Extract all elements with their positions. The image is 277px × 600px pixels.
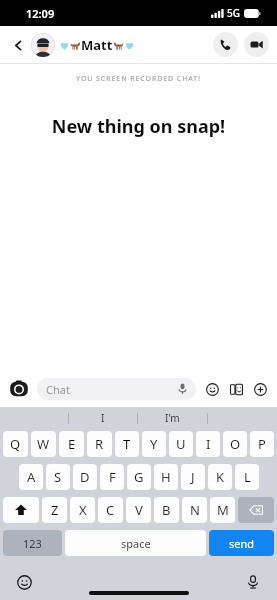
button[interactable]: K	[208, 464, 232, 490]
staticText: M	[217, 501, 229, 519]
button[interactable]: space	[65, 530, 206, 556]
button[interactable]: Stickers	[227, 380, 245, 398]
button[interactable]: N	[182, 497, 207, 523]
button[interactable]: S	[46, 464, 70, 490]
button[interactable]: X	[70, 497, 95, 523]
staticText: K	[216, 468, 225, 486]
staticText: N	[190, 501, 200, 519]
staticText: New thing on snap!	[0, 114, 277, 139]
staticText: Matt	[81, 36, 113, 54]
button[interactable]: C	[98, 497, 123, 523]
staticText: Q	[10, 435, 21, 453]
button[interactable]: L	[235, 464, 259, 490]
button[interactable]: T	[115, 431, 139, 457]
staticText: V	[135, 501, 143, 519]
staticText: F	[109, 468, 116, 486]
button[interactable]: Camera	[8, 378, 30, 400]
button[interactable]: B	[154, 497, 179, 523]
staticText: T	[123, 435, 131, 453]
staticText: Z	[51, 501, 59, 519]
button[interactable]: 123	[3, 530, 62, 556]
button[interactable]: Q	[3, 431, 28, 457]
button[interactable]: O	[223, 431, 247, 457]
staticText: A	[27, 468, 36, 486]
button[interactable]: Video call	[244, 32, 269, 57]
staticText: send	[229, 536, 255, 551]
staticText: O	[230, 435, 241, 453]
button[interactable]: G	[127, 464, 151, 490]
button[interactable]: I	[196, 431, 220, 457]
staticText: B	[162, 501, 171, 519]
button[interactable]: More	[251, 380, 269, 398]
button[interactable]: I'm	[138, 407, 207, 429]
button[interactable]: U	[169, 431, 193, 457]
button[interactable]: E	[59, 431, 84, 457]
button[interactable]: R	[87, 431, 112, 457]
button[interactable]: Y	[142, 431, 166, 457]
staticText: L	[244, 468, 251, 486]
staticText: J	[191, 468, 195, 486]
button[interactable]: I	[69, 407, 137, 429]
button[interactable]: A	[19, 464, 43, 490]
button[interactable]: Shift	[3, 497, 39, 523]
button[interactable]: Call	[213, 32, 238, 57]
staticText: 123	[23, 536, 42, 551]
button[interactable]: V	[126, 497, 151, 523]
staticText: C	[106, 501, 115, 519]
staticText: D	[80, 468, 90, 486]
button[interactable]: W	[31, 431, 56, 457]
staticText: I'm	[165, 411, 180, 425]
staticText: E	[68, 435, 76, 453]
button[interactable]: Z	[42, 497, 67, 523]
staticText: P	[258, 435, 266, 453]
button[interactable]: H	[154, 464, 178, 490]
button[interactable]: J	[181, 464, 205, 490]
button[interactable]: M	[210, 497, 235, 523]
button[interactable]: Emoji	[203, 380, 221, 398]
staticText: 5G	[227, 6, 240, 20]
staticText: G	[134, 468, 144, 486]
button[interactable]: Profile	[31, 33, 55, 57]
staticText: X	[79, 501, 87, 519]
staticText: R	[95, 435, 104, 453]
button[interactable]: Emoji keyboard	[14, 572, 34, 592]
staticText: H	[161, 468, 171, 486]
staticText: U	[176, 435, 186, 453]
staticText: space	[121, 536, 151, 551]
button[interactable]: send	[209, 530, 274, 556]
staticText: S	[54, 468, 62, 486]
button[interactable]: Back	[8, 35, 28, 55]
staticText: Y	[150, 435, 158, 453]
button[interactable]: P	[250, 431, 274, 457]
button[interactable]: Backspace	[238, 497, 274, 523]
button[interactable]: Dictation	[243, 572, 263, 592]
staticText: Chat	[46, 382, 178, 397]
staticText: 12:09	[26, 6, 55, 21]
staticText: YOU SCREEN RECORDED CHAT!	[0, 74, 277, 84]
button[interactable]: Chat	[37, 378, 196, 400]
staticText: I	[206, 435, 211, 453]
staticText: W	[37, 435, 50, 453]
button[interactable]: D	[73, 464, 97, 490]
button[interactable]: F	[100, 464, 124, 490]
staticText: I	[101, 411, 105, 425]
